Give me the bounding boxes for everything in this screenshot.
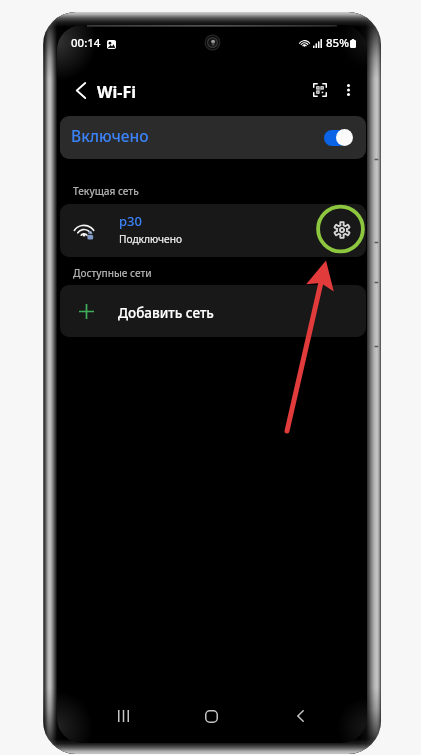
- button[interactable]: Scan QR code: [304, 74, 336, 106]
- button[interactable]: Back: [64, 73, 98, 107]
- staticText: p30: [119, 212, 142, 230]
- button[interactable]: Home: [194, 699, 228, 733]
- staticText: Добавить сеть: [118, 304, 214, 322]
- staticText: Подключено: [119, 232, 182, 246]
- button[interactable]: More options: [332, 74, 364, 106]
- button[interactable]: Recent apps: [106, 699, 140, 733]
- button[interactable]: Включено: [60, 116, 366, 159]
- button[interactable]: Back: [283, 699, 317, 733]
- button[interactable]: Добавить сеть: [60, 285, 366, 337]
- staticText: 85%: [326, 35, 349, 51]
- staticText: Включено: [71, 125, 149, 146]
- staticText: Текущая сеть: [73, 184, 139, 198]
- staticText: Доступные сети: [73, 266, 152, 280]
- staticText: 00:14: [71, 35, 101, 51]
- button[interactable]: Network settings: [324, 212, 360, 248]
- button[interactable]: p30: [60, 204, 366, 257]
- staticText: Wi-Fi: [97, 81, 136, 103]
